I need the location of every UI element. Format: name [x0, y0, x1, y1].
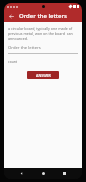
- button[interactable]: Back: [17, 169, 26, 178]
- button[interactable]: Recent apps: [60, 169, 69, 178]
- staticText: Order the letters: [19, 12, 68, 20]
- staticText: Order the letters: [8, 45, 41, 51]
- button[interactable]: Home: [39, 169, 48, 178]
- staticText: a circular board, typically one made of …: [8, 26, 78, 41]
- button[interactable]: Navigate up: [6, 11, 16, 21]
- staticText: count: [8, 59, 18, 64]
- button[interactable]: ANSWER: [27, 71, 59, 79]
- staticText: ANSWER: [36, 73, 51, 78]
- button[interactable]: Order the letters: [8, 45, 78, 54]
